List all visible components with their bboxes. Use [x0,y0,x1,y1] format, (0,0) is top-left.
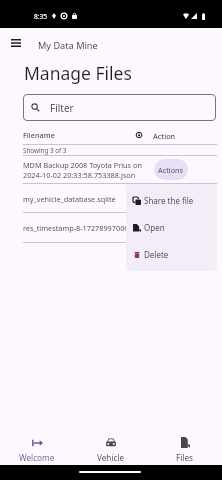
staticText: Files [176,452,194,463]
button[interactable]: Share the file [126,187,217,214]
staticText: Filter [50,101,74,115]
staticText: Actions [158,223,184,233]
staticText: Open [144,222,165,233]
staticText: Welcome [19,452,55,463]
button[interactable]: Actions [154,217,188,238]
staticText: res_timestamp-8-17278997006 [23,223,129,233]
staticText: 8:35 [34,12,48,21]
staticText: Share the file [144,195,194,206]
button[interactable]: Delete [126,241,217,268]
staticText: my_vehicle_database.sqlite [23,194,116,204]
button[interactable]: Welcome [0,436,74,464]
button[interactable]: Vehicle [74,436,148,464]
button[interactable]: Files [148,436,222,464]
staticText: MDM Backup 2008 Toyota Prius on [23,160,142,170]
button[interactable]: Actions [154,188,188,209]
staticText: Vehicle [97,452,125,463]
staticText: Actions [158,165,184,175]
button[interactable]: Action [136,128,176,141]
button[interactable]: Actions [154,159,188,180]
staticText: Manage Files [24,61,132,85]
button[interactable]: Open navigation drawer [4,31,28,55]
staticText: My Data Mine [38,39,98,52]
staticText: Filename [23,130,55,140]
staticText: Action [153,131,176,141]
staticText: Actions [158,194,184,204]
staticText: Delete [144,249,169,260]
button[interactable]: Filter [23,94,216,121]
staticText: 2024-10-02 20:33:58.753388.json [23,170,136,180]
staticText: Showing 3 of 3 [23,146,67,155]
button[interactable]: Open [126,214,217,241]
